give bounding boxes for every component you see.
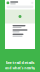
staticText: and what's nearby [2, 65, 38, 71]
staticText: See trail details [5, 60, 34, 65]
